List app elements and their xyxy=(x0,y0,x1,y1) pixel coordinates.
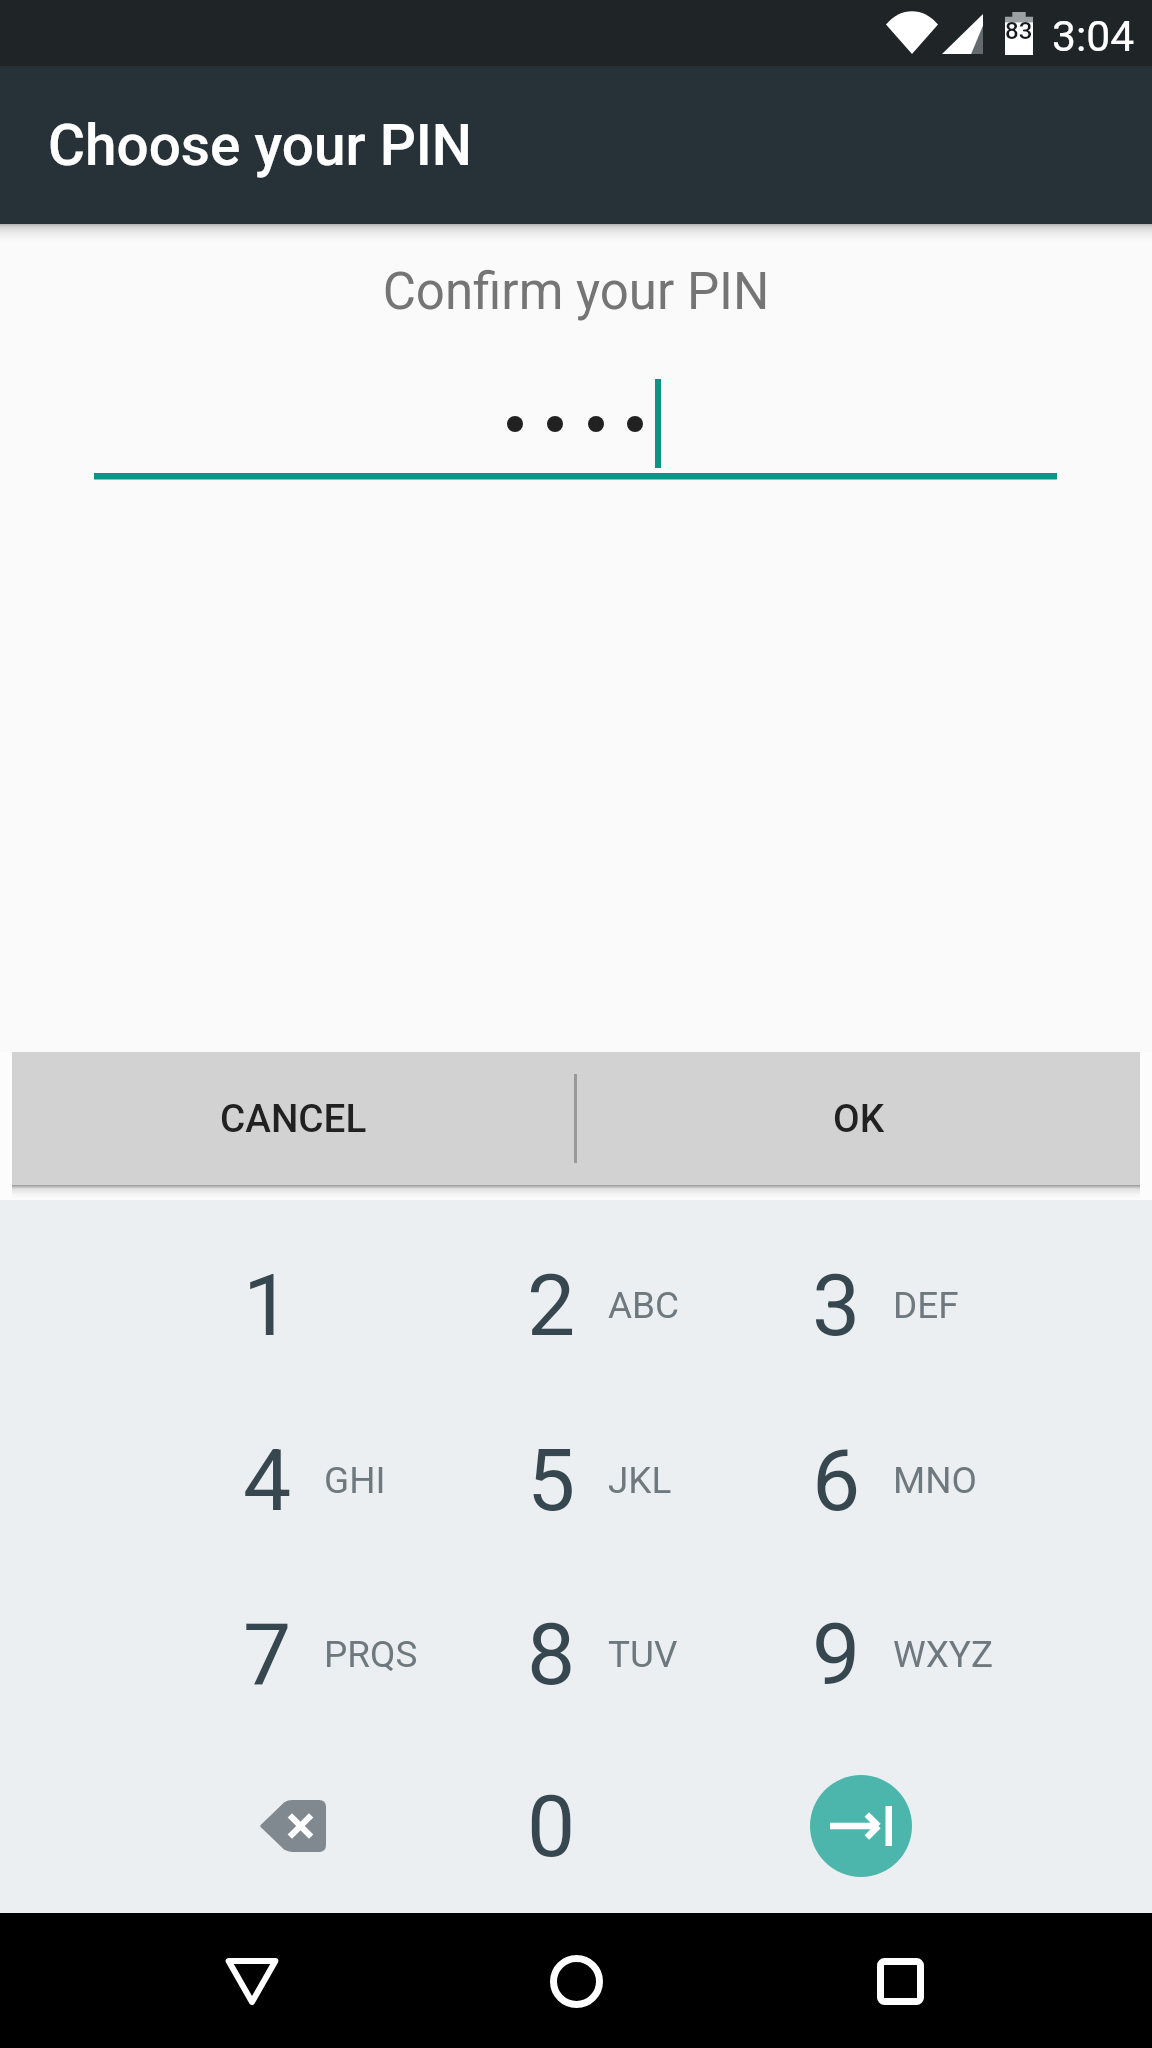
button[interactable]: PIN field xyxy=(0,354,1152,494)
staticText: OK xyxy=(833,1096,885,1141)
staticText: 0 xyxy=(527,1776,576,1877)
staticText: WXYZ xyxy=(893,1633,994,1676)
button[interactable]: 0 xyxy=(433,1739,718,1913)
button[interactable]: 5 xyxy=(433,1393,718,1567)
staticText: 4 xyxy=(243,1430,292,1531)
staticText: MNO xyxy=(893,1459,977,1502)
button[interactable]: 3 xyxy=(718,1218,1003,1392)
button[interactable]: 4 xyxy=(149,1393,434,1567)
staticText: PRQS xyxy=(324,1633,418,1676)
staticText: 6 xyxy=(812,1430,861,1531)
staticText: 83 xyxy=(1005,17,1033,45)
staticText: GHI xyxy=(324,1459,386,1502)
staticText: 5 xyxy=(527,1430,576,1531)
staticText: 7 xyxy=(243,1604,292,1705)
staticText: DEF xyxy=(893,1284,959,1327)
button[interactable]: 6 xyxy=(718,1393,1003,1567)
button[interactable]: 2 xyxy=(433,1218,718,1392)
other: Battery 83 percent xyxy=(1005,12,1033,55)
staticText: CANCEL xyxy=(220,1096,367,1141)
staticText: TUV xyxy=(608,1633,678,1676)
button[interactable]: Back xyxy=(192,1921,312,2041)
staticText: 2 xyxy=(527,1255,576,1356)
button[interactable]: 1 xyxy=(149,1218,434,1392)
staticText: 9 xyxy=(812,1604,861,1705)
button[interactable]: 7 xyxy=(149,1567,434,1741)
staticText: 3 xyxy=(812,1255,861,1356)
staticText: JKL xyxy=(608,1459,672,1502)
other: Wi-Fi xyxy=(886,12,938,54)
other: Mobile signal xyxy=(942,14,983,54)
button[interactable]: 9 xyxy=(718,1567,1003,1741)
staticText: Confirm your PIN xyxy=(0,262,1152,322)
button[interactable]: Recent apps xyxy=(840,1921,960,2041)
button[interactable]: OK xyxy=(577,1052,1140,1185)
button[interactable]: Next xyxy=(718,1739,1003,1913)
button[interactable]: 8 xyxy=(433,1567,718,1741)
staticText: Choose your PIN xyxy=(48,112,473,178)
staticText: ABC xyxy=(608,1284,680,1327)
staticText: 8 xyxy=(527,1604,576,1705)
button[interactable]: Home xyxy=(516,1921,636,2041)
button[interactable]: CANCEL xyxy=(12,1052,574,1185)
staticText: 3:04 xyxy=(1052,11,1135,61)
staticText: 1 xyxy=(243,1255,292,1356)
button[interactable]: Delete xyxy=(149,1739,434,1913)
